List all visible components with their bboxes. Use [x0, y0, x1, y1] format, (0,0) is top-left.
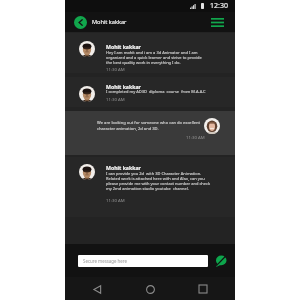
staticText: 11:30 AM [106, 66, 125, 72]
staticText: Mohit kakkar [92, 18, 127, 26]
staticText: Hey I am mohit and i am a 3d Animator an… [106, 50, 198, 55]
staticText: please provide me with your contact numb… [106, 181, 211, 186]
staticText: Mohit kakkar [106, 164, 141, 171]
button[interactable]: Back [74, 16, 87, 29]
button[interactable]: Secure message here [78, 255, 208, 267]
button[interactable]: Back [89, 281, 105, 297]
button[interactable]: Menu [208, 13, 226, 31]
staticText: Secure message here [83, 258, 128, 264]
staticText: 12:30 [210, 1, 228, 11]
staticText: organized and a quick learner and strive… [106, 55, 202, 60]
staticText: 11:30 AM [106, 96, 125, 102]
staticText: Mohit kakkar [106, 43, 141, 50]
staticText: 11:30 AM [186, 134, 205, 140]
staticText: 11:30 AM [106, 197, 125, 203]
staticText: I completed my AD3D diploma course from … [106, 89, 206, 94]
button[interactable]: Mohit kakkar [65, 77, 235, 107]
staticText: the best quality work in everything I do… [106, 60, 181, 65]
staticText: my 2md animation studio youtube channel. [106, 186, 189, 191]
staticText: Related work is attached here with and A… [106, 176, 205, 181]
button[interactable]: We are looking out for someone who can d… [65, 111, 235, 155]
staticText: We are looking out for someone who can d… [97, 120, 201, 126]
button[interactable]: Send message [214, 254, 228, 268]
button[interactable]: Mohit kakkar [65, 33, 235, 73]
staticText: Mohit kakkar [106, 83, 141, 90]
button[interactable]: Home [142, 281, 158, 297]
staticText: I can provide you 2d with 3D Character A… [106, 171, 202, 176]
staticText: character animation, 2d and 3D. [97, 126, 159, 132]
button[interactable]: Mohit kakkar [65, 157, 235, 217]
button[interactable]: Recent apps [195, 281, 211, 297]
